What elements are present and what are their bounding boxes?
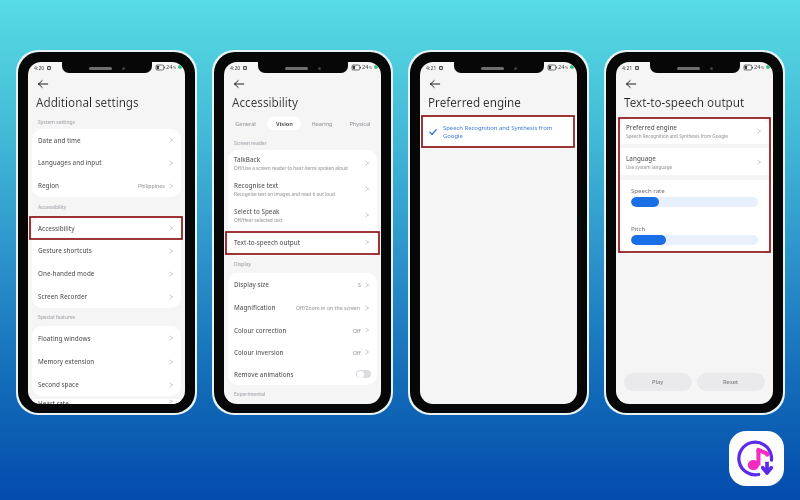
staticText: Recognise text xyxy=(234,181,279,190)
button[interactable]: Recognise text xyxy=(228,176,377,202)
button[interactable]: TalkBack xyxy=(228,150,377,176)
staticText: % xyxy=(369,65,373,70)
button[interactable]: Preferred engine xyxy=(620,118,769,144)
staticText: Heart rate xyxy=(38,399,167,404)
staticText: S xyxy=(358,281,361,288)
staticText: System settings xyxy=(38,119,75,126)
staticText: Additional settings xyxy=(36,94,139,110)
staticText: Magnification xyxy=(234,303,296,312)
staticText: Speech Recognition and Synthesis from Go… xyxy=(443,124,565,140)
staticText: Pitch xyxy=(631,224,646,232)
staticText: Experimental xyxy=(234,391,266,398)
staticText: Physical xyxy=(349,120,371,128)
button[interactable]: Display size xyxy=(228,273,377,296)
button[interactable]: Back xyxy=(36,77,49,90)
button[interactable]: Speech Recognition and Synthesis from Go… xyxy=(420,117,577,146)
staticText: Off xyxy=(353,327,361,334)
staticText: General xyxy=(235,120,256,128)
staticText: Hearing xyxy=(311,120,333,128)
staticText: Remove animations xyxy=(234,370,356,379)
staticText: Speech rate xyxy=(631,186,665,194)
staticText: Accessibility xyxy=(38,224,167,233)
button[interactable]: Reset xyxy=(697,373,765,391)
staticText: Accessibility xyxy=(38,204,67,211)
staticText: Preferred engine xyxy=(428,94,521,110)
button[interactable]: Remove animations toggle xyxy=(356,370,371,378)
staticText: 24 xyxy=(166,63,173,71)
staticText: Region xyxy=(38,181,138,190)
button[interactable]: Second space xyxy=(32,373,181,396)
staticText: Preferred engine xyxy=(626,123,677,132)
button[interactable]: Heart rate xyxy=(32,399,181,404)
button[interactable]: Memory extension xyxy=(32,350,181,373)
button[interactable]: Back xyxy=(232,77,245,90)
staticText: 24 xyxy=(362,63,369,71)
button[interactable]: Remove animations xyxy=(228,363,377,385)
button[interactable]: Text-to-speech output xyxy=(228,228,377,256)
button[interactable]: Region xyxy=(32,174,181,197)
staticText: % xyxy=(173,65,177,70)
staticText: Off/Zoom in on the screen xyxy=(296,304,361,311)
button[interactable]: Hearing xyxy=(305,117,339,130)
staticText: Memory extension xyxy=(38,357,167,366)
staticText: Accessibility xyxy=(232,94,298,110)
staticText: Use system language xyxy=(626,164,673,170)
staticText: Colour correction xyxy=(234,326,353,335)
staticText: Play xyxy=(652,378,664,386)
button[interactable]: Date and time xyxy=(32,129,181,151)
staticText: 24 xyxy=(558,63,565,71)
button[interactable]: Back xyxy=(428,77,441,90)
staticText: Off/Hear selected text xyxy=(234,217,283,223)
button[interactable]: App logo xyxy=(729,431,784,486)
button[interactable]: Colour inversion xyxy=(228,341,377,363)
staticText: TalkBack xyxy=(234,155,261,164)
staticText: Colour inversion xyxy=(234,348,353,357)
staticText: % xyxy=(565,65,569,70)
staticText: Display size xyxy=(234,280,358,289)
button[interactable]: Slider xyxy=(631,197,758,207)
staticText: Second space xyxy=(38,380,167,389)
button[interactable]: Accessibility xyxy=(32,217,181,239)
button[interactable]: Languages and input xyxy=(32,151,181,174)
staticText: Screen Recorder xyxy=(38,292,167,301)
button[interactable]: Magnification xyxy=(228,296,377,319)
staticText: Languages and input xyxy=(38,158,167,167)
staticText: Gesture shortcuts xyxy=(38,246,167,255)
button[interactable]: Physical xyxy=(343,117,377,130)
staticText: Recognise text on images and read it out… xyxy=(234,191,335,197)
button[interactable]: Language xyxy=(620,148,769,175)
button[interactable]: Gesture shortcuts xyxy=(32,239,181,262)
staticText: Reset xyxy=(723,378,739,386)
staticText: Date and time xyxy=(38,136,167,145)
button[interactable]: Screen Recorder xyxy=(32,285,181,308)
button[interactable]: General xyxy=(228,117,263,130)
button[interactable]: Slider xyxy=(631,235,758,245)
staticText: 4:20 xyxy=(34,64,45,71)
staticText: 4:21 xyxy=(426,64,437,71)
staticText: 4:20 xyxy=(230,64,241,71)
button[interactable]: Colour correction xyxy=(228,319,377,341)
staticText: 4:21 xyxy=(622,64,633,71)
staticText: Screen reader xyxy=(234,140,267,147)
staticText: Vision xyxy=(276,120,293,128)
button[interactable]: Select to Speak xyxy=(228,202,377,228)
staticText: Language xyxy=(626,154,656,163)
button[interactable]: Back xyxy=(624,77,637,90)
staticText: Select to Speak xyxy=(234,207,280,216)
button[interactable]: Vision xyxy=(267,117,301,130)
staticText: Off/Use a screen reader to hear items sp… xyxy=(234,165,348,171)
staticText: Special features xyxy=(38,314,76,321)
staticText: 24 xyxy=(754,63,761,71)
staticText: Philippines xyxy=(138,182,165,189)
staticText: Off xyxy=(353,349,361,356)
button[interactable]: Play xyxy=(624,373,692,391)
staticText: Speech Recognition and Synthesis from Go… xyxy=(626,133,728,139)
button[interactable]: One-handed mode xyxy=(32,262,181,285)
staticText: % xyxy=(761,65,765,70)
staticText: One-handed mode xyxy=(38,269,167,278)
staticText: Text-to-speech output xyxy=(234,238,363,247)
staticText: Floating windows xyxy=(38,334,167,343)
staticText: Display xyxy=(234,261,252,268)
staticText: Text-to-speech output xyxy=(624,94,745,110)
button[interactable]: Floating windows xyxy=(32,326,181,350)
